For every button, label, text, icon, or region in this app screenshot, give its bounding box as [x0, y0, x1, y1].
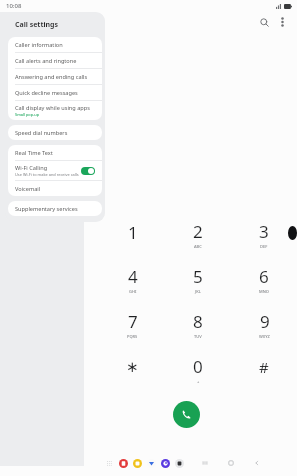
staticText: 1 — [128, 221, 138, 244]
button[interactable]: 4 — [100, 257, 165, 302]
staticText: Caller information — [15, 41, 63, 49]
staticText: Use Wi-Fi to make and receive calls — [15, 172, 79, 177]
staticText: Quick decline messages — [15, 89, 78, 97]
staticText: 8 — [193, 310, 203, 333]
staticText: Call settings — [15, 20, 59, 30]
staticText: Small pop-up — [15, 112, 40, 117]
button[interactable]: # — [231, 347, 297, 391]
button[interactable]: Supplementary services — [8, 201, 102, 216]
staticText: MNO — [259, 289, 269, 294]
button[interactable]: More options — [273, 13, 291, 31]
button[interactable]: Quick decline messages — [8, 85, 102, 101]
button[interactable]: Recents — [198, 456, 212, 470]
staticText: TUV — [194, 334, 202, 339]
button[interactable]: Voicemail — [8, 181, 102, 196]
staticText: Speed dial numbers — [15, 129, 68, 137]
button[interactable]: 8 — [165, 302, 231, 347]
button[interactable]: Back — [250, 456, 264, 470]
staticText: Supplementary services — [15, 205, 78, 213]
staticText: + — [197, 379, 200, 384]
staticText: 5 — [193, 265, 203, 288]
button[interactable]: Apps — [104, 458, 114, 468]
staticText: 7 — [128, 310, 138, 333]
button[interactable]: Home — [224, 456, 238, 470]
staticText: Voicemail — [15, 185, 41, 193]
button[interactable]: Speed dial numbers — [8, 125, 102, 140]
button[interactable]: Real Time Text — [8, 145, 102, 161]
staticText: DEF — [260, 244, 268, 249]
button[interactable]: 1 — [100, 212, 165, 257]
staticText: GHI — [129, 289, 137, 294]
button[interactable]: App — [146, 458, 156, 468]
button[interactable]: App — [118, 458, 128, 468]
button[interactable]: Call alerts and ringtone — [8, 53, 102, 69]
staticText: ∗ — [126, 358, 139, 375]
staticText: 10:08 — [6, 2, 22, 10]
button[interactable]: 3 — [231, 212, 297, 257]
button[interactable]: 2 — [165, 212, 231, 257]
staticText: # — [259, 357, 269, 377]
button[interactable]: App — [160, 458, 170, 468]
staticText: 0 — [193, 355, 203, 378]
staticText: 3 — [259, 220, 269, 243]
button[interactable]: 0 — [165, 347, 231, 391]
staticText: Call alerts and ringtone — [15, 57, 77, 65]
button[interactable]: App — [132, 458, 142, 468]
button[interactable]: Wi-Fi Calling — [8, 161, 102, 181]
button[interactable]: 7 — [100, 302, 165, 347]
staticText: 6 — [259, 265, 269, 288]
staticText: Real Time Text — [15, 149, 53, 157]
button[interactable]: App — [174, 458, 184, 468]
staticText: 4 — [128, 265, 138, 288]
button[interactable]: 6 — [231, 257, 297, 302]
button[interactable]: 5 — [165, 257, 231, 302]
button[interactable]: ∗ — [100, 347, 165, 391]
button[interactable]: Answering and ending calls — [8, 69, 102, 85]
staticText: 2 — [193, 220, 203, 243]
staticText: WXYZ — [259, 334, 270, 339]
staticText: ABC — [194, 244, 202, 249]
button[interactable]: Call display while using apps — [8, 101, 102, 120]
staticText: 9 — [260, 310, 270, 333]
staticText: JKL — [195, 289, 201, 294]
staticText: PQRS — [127, 334, 138, 339]
staticText: Wi-Fi Calling — [15, 164, 48, 172]
button[interactable]: Caller information — [8, 37, 102, 53]
button[interactable]: Search — [255, 13, 273, 31]
staticText: Answering and ending calls — [15, 73, 88, 81]
staticText: Call display while using apps — [15, 104, 90, 112]
button[interactable]: Call — [173, 401, 200, 428]
button[interactable]: 9 — [231, 302, 297, 347]
